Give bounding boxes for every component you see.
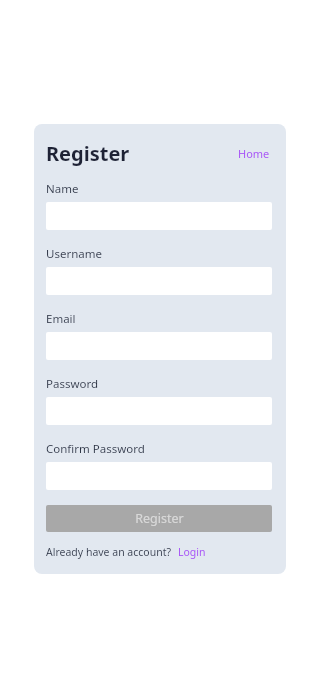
button[interactable]: Register <box>46 505 272 532</box>
staticText: Username <box>46 246 102 262</box>
staticText: Already have an account? <box>46 545 172 559</box>
button[interactable]: Home <box>236 144 272 163</box>
staticText: Login <box>178 545 206 559</box>
staticText: Home <box>238 146 270 161</box>
staticText: Password <box>46 376 99 392</box>
staticText: Email <box>46 311 76 327</box>
staticText: Register <box>46 140 130 167</box>
staticText: Register <box>135 510 184 527</box>
staticText: Name <box>46 181 79 197</box>
staticText: Confirm Password <box>46 441 145 457</box>
button[interactable]: Login <box>177 544 207 560</box>
